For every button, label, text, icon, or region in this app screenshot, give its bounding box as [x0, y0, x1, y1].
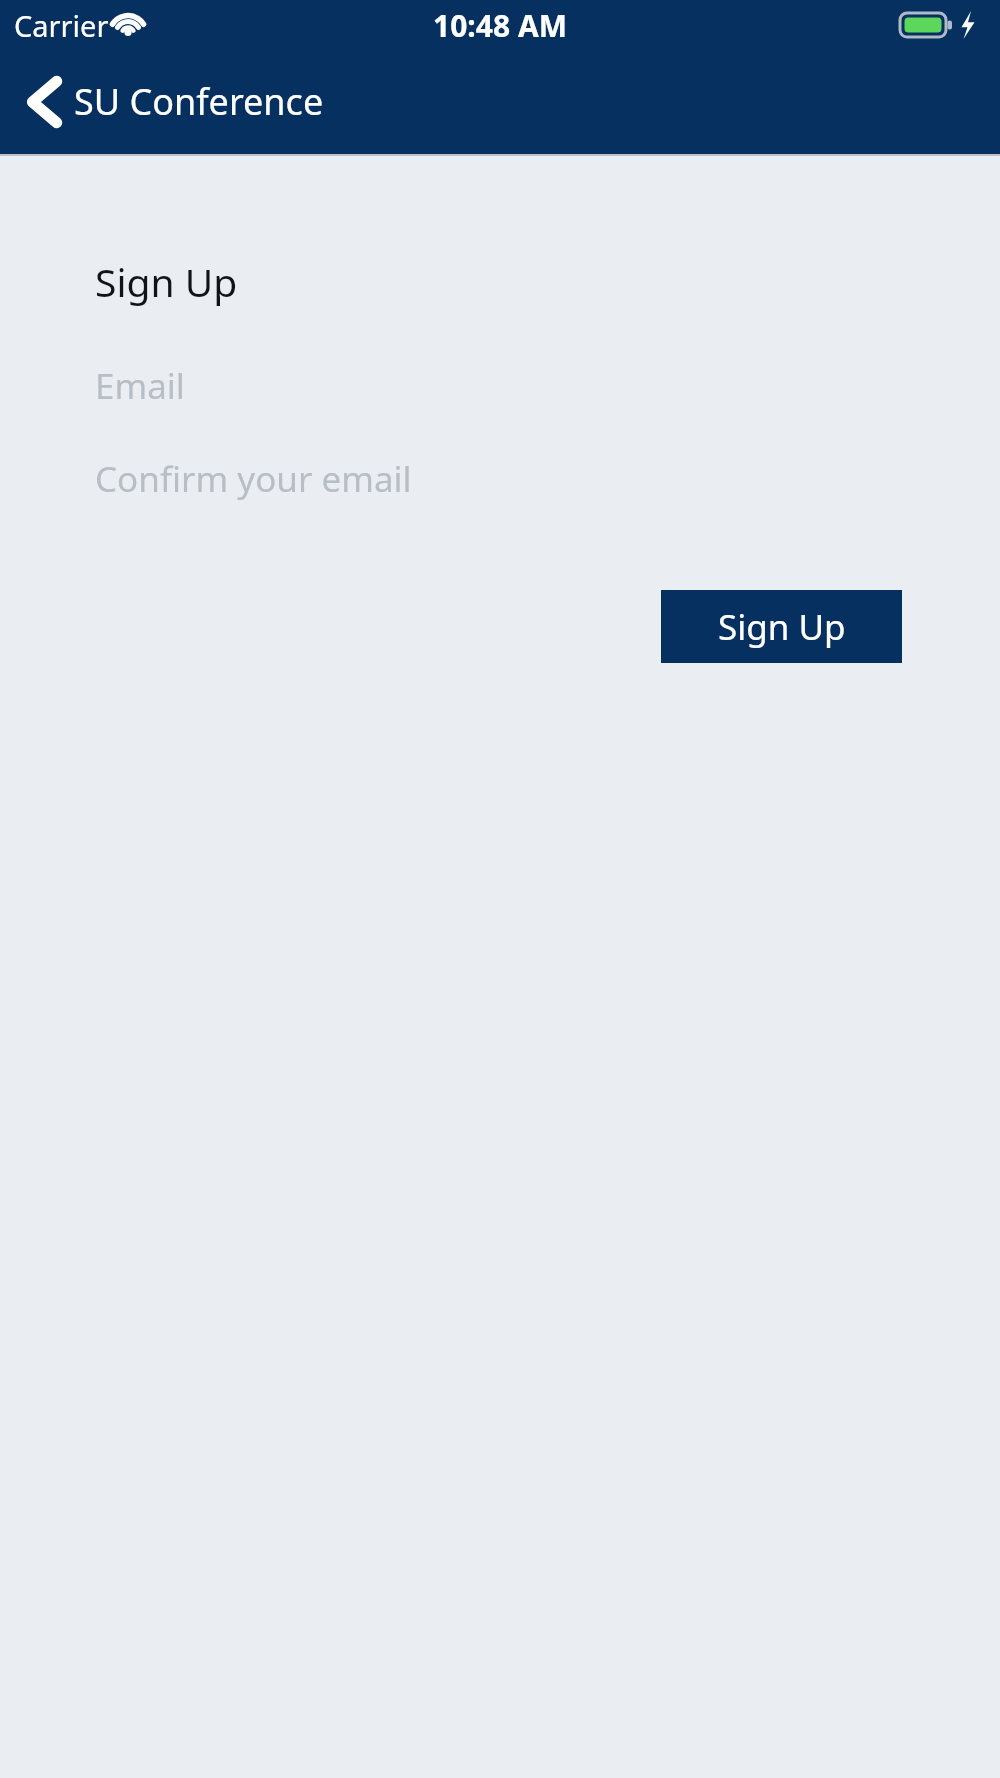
staticText: SU Conference [74, 77, 324, 126]
button[interactable]: Confirm your email [0, 448, 1000, 510]
other: Battery charging [900, 10, 982, 40]
button[interactable]: Email [0, 355, 1000, 417]
button[interactable]: Back [0, 50, 324, 154]
staticText: Sign Up [95, 255, 238, 308]
staticText: Email [95, 362, 185, 410]
other: Wi-Fi signal [108, 10, 148, 40]
staticText: 10:48 AM [433, 5, 567, 46]
staticText: Sign Up [718, 603, 846, 651]
button[interactable]: Sign Up [661, 590, 902, 663]
staticText: Carrier [14, 6, 109, 45]
staticText: Confirm your email [95, 455, 412, 503]
